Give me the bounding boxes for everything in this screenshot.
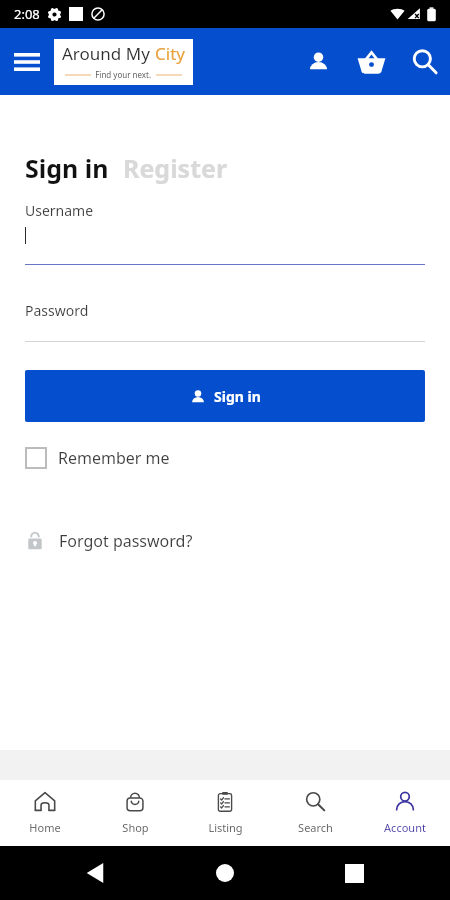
staticText: Username xyxy=(25,201,94,220)
button[interactable]: Back xyxy=(73,851,117,895)
button[interactable]: Password xyxy=(25,300,425,342)
staticText: Sign in xyxy=(25,151,109,185)
staticText: Shop xyxy=(122,820,149,835)
staticText: Home xyxy=(29,820,61,835)
staticText: Remember me xyxy=(58,447,170,469)
staticText: Sign in xyxy=(214,387,261,406)
staticText: Search xyxy=(298,820,333,835)
button[interactable]: Shopping basket xyxy=(345,28,398,95)
staticText: Around My xyxy=(62,42,155,65)
staticText: Account xyxy=(384,820,426,835)
button[interactable]: Open navigation menu xyxy=(0,28,54,95)
button[interactable]: Search xyxy=(398,28,450,95)
button[interactable]: Account xyxy=(292,28,345,95)
button[interactable]: Shop xyxy=(90,780,180,846)
staticText: Find your next. xyxy=(91,69,156,80)
button[interactable]: Search xyxy=(270,780,360,846)
button[interactable]: Recent apps xyxy=(332,851,376,895)
staticText: Register xyxy=(123,151,228,185)
button[interactable]: Sign in xyxy=(25,151,109,185)
staticText: City xyxy=(155,42,185,65)
button[interactable]: Username xyxy=(25,200,425,265)
staticText: 2:08 xyxy=(14,5,40,23)
button[interactable]: Around My xyxy=(54,39,193,85)
button[interactable]: Register xyxy=(123,151,228,185)
staticText: Listing xyxy=(208,820,243,835)
button[interactable]: Remember me xyxy=(25,447,170,469)
staticText: Forgot password? xyxy=(59,530,193,552)
button[interactable]: Home xyxy=(0,780,90,846)
button[interactable]: Home xyxy=(203,851,247,895)
button[interactable]: Forgot password? xyxy=(25,530,193,552)
button[interactable]: Sign in xyxy=(25,370,425,422)
button[interactable]: Account xyxy=(360,780,450,846)
staticText: Password xyxy=(25,301,89,320)
button[interactable]: Listing xyxy=(180,780,270,846)
